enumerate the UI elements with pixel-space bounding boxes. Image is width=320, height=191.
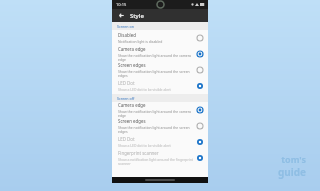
button[interactable]: Camera edge <box>112 46 208 62</box>
staticText: Style <box>130 12 144 20</box>
button[interactable]: Fingerprint scanner <box>112 150 208 166</box>
button[interactable]: Disabled <box>112 30 208 46</box>
staticText: Show the notification light around the s… <box>118 125 194 134</box>
button[interactable]: LED Dot <box>112 134 208 150</box>
staticText: Disabled <box>118 32 136 38</box>
staticText: Screen on <box>117 24 134 29</box>
staticText: Camera edge <box>118 102 146 108</box>
staticText: Show a LED dot to be visible alert <box>118 143 171 148</box>
staticText: Screen off <box>117 96 135 101</box>
staticText: Show the notification light around the c… <box>118 109 194 118</box>
button[interactable]: LED Dot <box>112 78 208 94</box>
staticText: tom's <box>281 153 306 165</box>
staticText: LED Dot <box>118 80 135 86</box>
staticText: Show a LED dot to be visible alert <box>118 87 171 92</box>
button[interactable]: Screen edges <box>112 62 208 78</box>
button[interactable]: Camera edge <box>112 102 208 118</box>
staticText: 10:15 <box>116 2 127 7</box>
staticText: Fingerprint scanner <box>118 150 159 156</box>
button[interactable]: Screen edges <box>112 118 208 134</box>
staticText: guide <box>277 165 306 179</box>
staticText: Screen edges <box>118 118 146 124</box>
staticText: Show the notification light around the c… <box>118 53 194 62</box>
staticText: Camera edge <box>118 46 146 52</box>
staticText: Show a notification light around the fin… <box>118 157 194 166</box>
staticText: LED Dot <box>118 136 135 142</box>
staticText: Show the notification light around the s… <box>118 69 194 78</box>
staticText: Notification light is disabled <box>118 39 163 44</box>
button[interactable]: Back <box>117 11 126 20</box>
staticText: Screen edges <box>118 62 146 68</box>
